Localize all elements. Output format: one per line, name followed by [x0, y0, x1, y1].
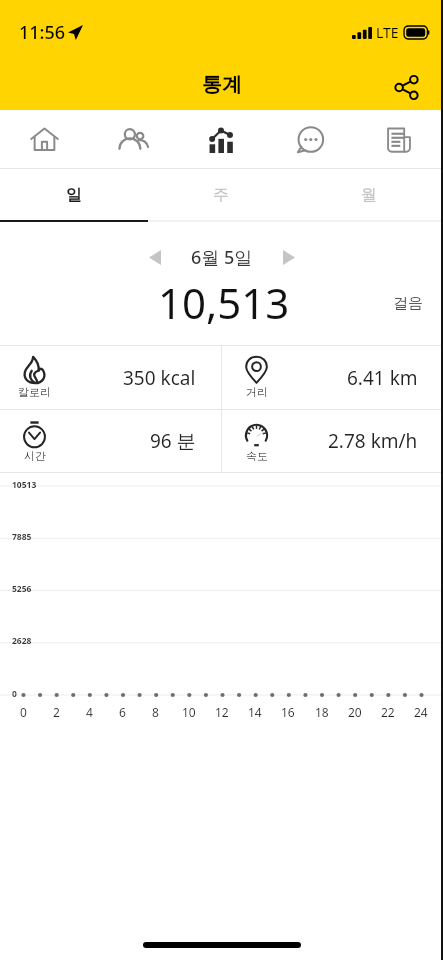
button[interactable]: 속도 [222, 410, 443, 472]
staticText: 14 [248, 704, 262, 720]
button[interactable]: News [354, 110, 443, 169]
staticText: 11:56 [19, 20, 66, 45]
staticText: 7885 [12, 531, 32, 543]
staticText: 20 [348, 704, 362, 720]
staticText: 2 [53, 704, 60, 720]
staticText: 통계 [202, 72, 242, 97]
staticText: 350 kcal [123, 365, 196, 391]
button[interactable]: Friends [88, 110, 176, 169]
button[interactable]: 일 [0, 169, 147, 220]
staticText: 96 분 [150, 428, 196, 454]
staticText: 6 [119, 704, 126, 720]
staticText: LTE [376, 23, 399, 42]
staticText: 속도 [246, 449, 268, 463]
staticText: 6월 5일 [191, 245, 253, 270]
button[interactable]: 시간 [0, 410, 221, 472]
staticText: 6.41 km [347, 365, 418, 391]
button[interactable]: 칼로리 [0, 346, 221, 409]
staticText: 0 [12, 688, 17, 700]
staticText: 8 [152, 704, 159, 720]
staticText: 2628 [12, 635, 32, 647]
button[interactable]: 거리 [222, 346, 443, 409]
staticText: 시간 [24, 449, 46, 463]
staticText: 거리 [246, 385, 268, 399]
button[interactable]: 주 [147, 169, 295, 220]
staticText: 5256 [12, 583, 32, 595]
staticText: 10,513 [158, 274, 290, 326]
staticText: 0 [20, 704, 27, 720]
staticText: 22 [381, 704, 395, 720]
staticText: 월 [361, 185, 377, 205]
staticText: 걸음 [393, 294, 423, 313]
button[interactable]: Home [0, 110, 88, 169]
staticText: 24 [414, 704, 428, 720]
staticText: 4 [86, 704, 93, 720]
staticText: 18 [315, 704, 329, 720]
staticText: 칼로리 [18, 385, 50, 399]
staticText: 2.78 km/h [328, 428, 418, 454]
button[interactable]: Chat [265, 110, 354, 169]
staticText: 12 [215, 704, 229, 720]
staticText: 일 [66, 185, 82, 205]
button[interactable]: Statistics [176, 110, 265, 169]
button[interactable]: Next day [271, 239, 307, 275]
staticText: 주 [213, 185, 229, 205]
button[interactable]: Share [385, 66, 427, 108]
staticText: 10513 [12, 479, 37, 491]
staticText: 10 [182, 704, 196, 720]
staticText: 16 [281, 704, 295, 720]
button[interactable]: 월 [295, 169, 443, 220]
button[interactable]: Previous day [137, 239, 173, 275]
